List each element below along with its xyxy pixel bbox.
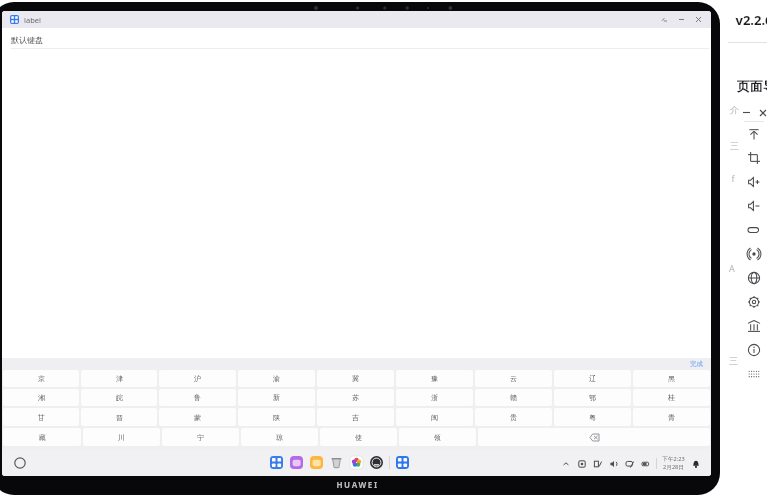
staticText: 吉 (352, 413, 359, 422)
button[interactable]: 渝 (238, 370, 315, 387)
staticText: 冀 (352, 374, 359, 383)
button[interactable]: Home (14, 457, 26, 469)
staticText: 沪 (194, 374, 201, 383)
button[interactable]: Bank (741, 314, 767, 338)
staticText: 渝 (273, 374, 280, 383)
button[interactable]: 冀 (317, 370, 394, 387)
button[interactable]: 晋 (81, 408, 157, 426)
staticText: 鲁 (194, 393, 201, 402)
button[interactable]: 贵 (475, 408, 552, 426)
button[interactable]: Apps (269, 455, 284, 470)
button[interactable]: Network (624, 458, 635, 469)
button[interactable]: Battery (640, 458, 651, 469)
staticText: 皖 (116, 393, 123, 402)
button[interactable]: Notifications (690, 458, 701, 469)
staticText: 宁 (197, 433, 204, 442)
button[interactable]: Minimize (673, 12, 690, 27)
button[interactable]: Security (576, 458, 587, 469)
button[interactable]: Volume (608, 458, 619, 469)
button[interactable]: Settings (741, 290, 767, 314)
button[interactable]: 完成 (690, 360, 703, 368)
button[interactable]: 苏 (317, 389, 394, 406)
staticText: 介 (730, 104, 739, 115)
button[interactable]: 领 (399, 428, 476, 446)
button[interactable]: 下午2:23 (662, 455, 685, 471)
button[interactable]: Backspace (478, 428, 710, 446)
staticText: 云 (510, 374, 517, 383)
button[interactable]: 浙 (396, 389, 473, 406)
button[interactable]: 宁 (162, 428, 239, 446)
button[interactable]: 青 (633, 408, 710, 426)
staticText: f (731, 172, 735, 184)
button[interactable]: Show hidden icons (560, 458, 571, 469)
button[interactable]: 甘 (3, 408, 79, 426)
staticText: 京 (38, 374, 45, 383)
button[interactable]: 辽 (554, 370, 631, 387)
button[interactable]: Keyboard (741, 362, 767, 386)
button[interactable]: Settings (369, 455, 384, 470)
button[interactable]: 粤 (554, 408, 631, 426)
button[interactable]: 川 (83, 428, 160, 446)
staticText: 三 (730, 140, 739, 151)
button[interactable]: 新 (238, 389, 315, 406)
staticText: A (729, 262, 735, 274)
button[interactable]: 吉 (317, 408, 394, 426)
button[interactable]: Recycle bin (329, 455, 344, 470)
button[interactable]: Store (349, 455, 364, 470)
button[interactable]: Close (690, 12, 707, 27)
staticText: 新 (273, 393, 280, 402)
button[interactable]: Volume up (741, 170, 767, 194)
staticText: 贵 (510, 413, 517, 422)
staticText: 苏 (352, 393, 359, 402)
button[interactable]: 沪 (159, 370, 236, 387)
button[interactable]: Network (741, 266, 767, 290)
button[interactable]: 云 (475, 370, 552, 387)
button[interactable]: 陕 (238, 408, 315, 426)
staticText: 青 (668, 413, 675, 422)
staticText: 下午2:23 (662, 455, 685, 463)
staticText: 津 (116, 374, 123, 383)
button[interactable]: 赣 (475, 389, 552, 406)
staticText: 2月28日 (663, 463, 684, 471)
button[interactable]: 藏 (3, 428, 81, 446)
staticText: 川 (118, 433, 125, 442)
button[interactable]: 鄂 (554, 389, 631, 406)
button[interactable]: Close (758, 107, 767, 118)
button[interactable]: App grid (395, 455, 410, 470)
button[interactable]: Scroll to top (741, 122, 767, 146)
button[interactable]: Crop (741, 146, 767, 170)
button[interactable]: 津 (81, 370, 157, 387)
button[interactable]: Minimize (741, 107, 752, 118)
staticText: 粤 (589, 413, 596, 422)
button[interactable]: Cast (741, 242, 767, 266)
staticText: 湘 (38, 393, 45, 402)
staticText: 默认键盘 (11, 35, 43, 45)
button[interactable]: 使 (320, 428, 397, 446)
staticText: 甘 (38, 413, 45, 422)
button[interactable]: Input method (592, 458, 603, 469)
button[interactable]: Restore (656, 12, 673, 27)
button[interactable]: 鲁 (159, 389, 236, 406)
button[interactable]: 闽 (396, 408, 473, 426)
button[interactable]: Gallery (289, 455, 304, 470)
button[interactable]: 桂 (633, 389, 710, 406)
button[interactable]: Volume down (741, 194, 767, 218)
staticText: 豫 (431, 374, 438, 383)
button[interactable]: 湘 (3, 389, 79, 406)
staticText: 桂 (668, 393, 675, 402)
button[interactable]: Battery (741, 218, 767, 242)
button[interactable]: 皖 (81, 389, 157, 406)
button[interactable]: 蒙 (159, 408, 236, 426)
button[interactable]: Info (741, 338, 767, 362)
button[interactable]: Files (309, 455, 324, 470)
staticText: 鄂 (589, 393, 596, 402)
button[interactable]: 黑 (633, 370, 710, 387)
button[interactable]: 京 (3, 370, 79, 387)
button[interactable]: 豫 (396, 370, 473, 387)
staticText: 黑 (668, 374, 675, 383)
staticText: 蒙 (194, 413, 201, 422)
staticText: 完成 (690, 360, 703, 368)
staticText: label (24, 15, 41, 25)
button[interactable]: 琼 (241, 428, 318, 446)
staticText: 领 (434, 433, 441, 442)
